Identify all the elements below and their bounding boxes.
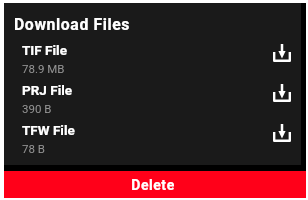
- button[interactable]: TIF File: [4, 34, 301, 74]
- staticText: Delete: [131, 177, 175, 193]
- staticText: TIF File: [22, 42, 67, 58]
- button[interactable]: Download PRJ File: [267, 78, 297, 108]
- button[interactable]: Delete: [4, 171, 306, 198]
- staticText: TFW File: [22, 122, 75, 138]
- button[interactable]: TFW File: [4, 114, 301, 154]
- staticText: PRJ File: [22, 82, 73, 98]
- button[interactable]: PRJ File: [4, 74, 301, 114]
- staticText: 390 B: [22, 102, 52, 115]
- staticText: Download Files: [14, 15, 131, 34]
- button[interactable]: Download TIF File: [267, 38, 297, 68]
- button[interactable]: Download TFW File: [267, 118, 297, 148]
- staticText: 78 B: [22, 142, 45, 155]
- staticText: 78.9 MB: [22, 62, 65, 75]
